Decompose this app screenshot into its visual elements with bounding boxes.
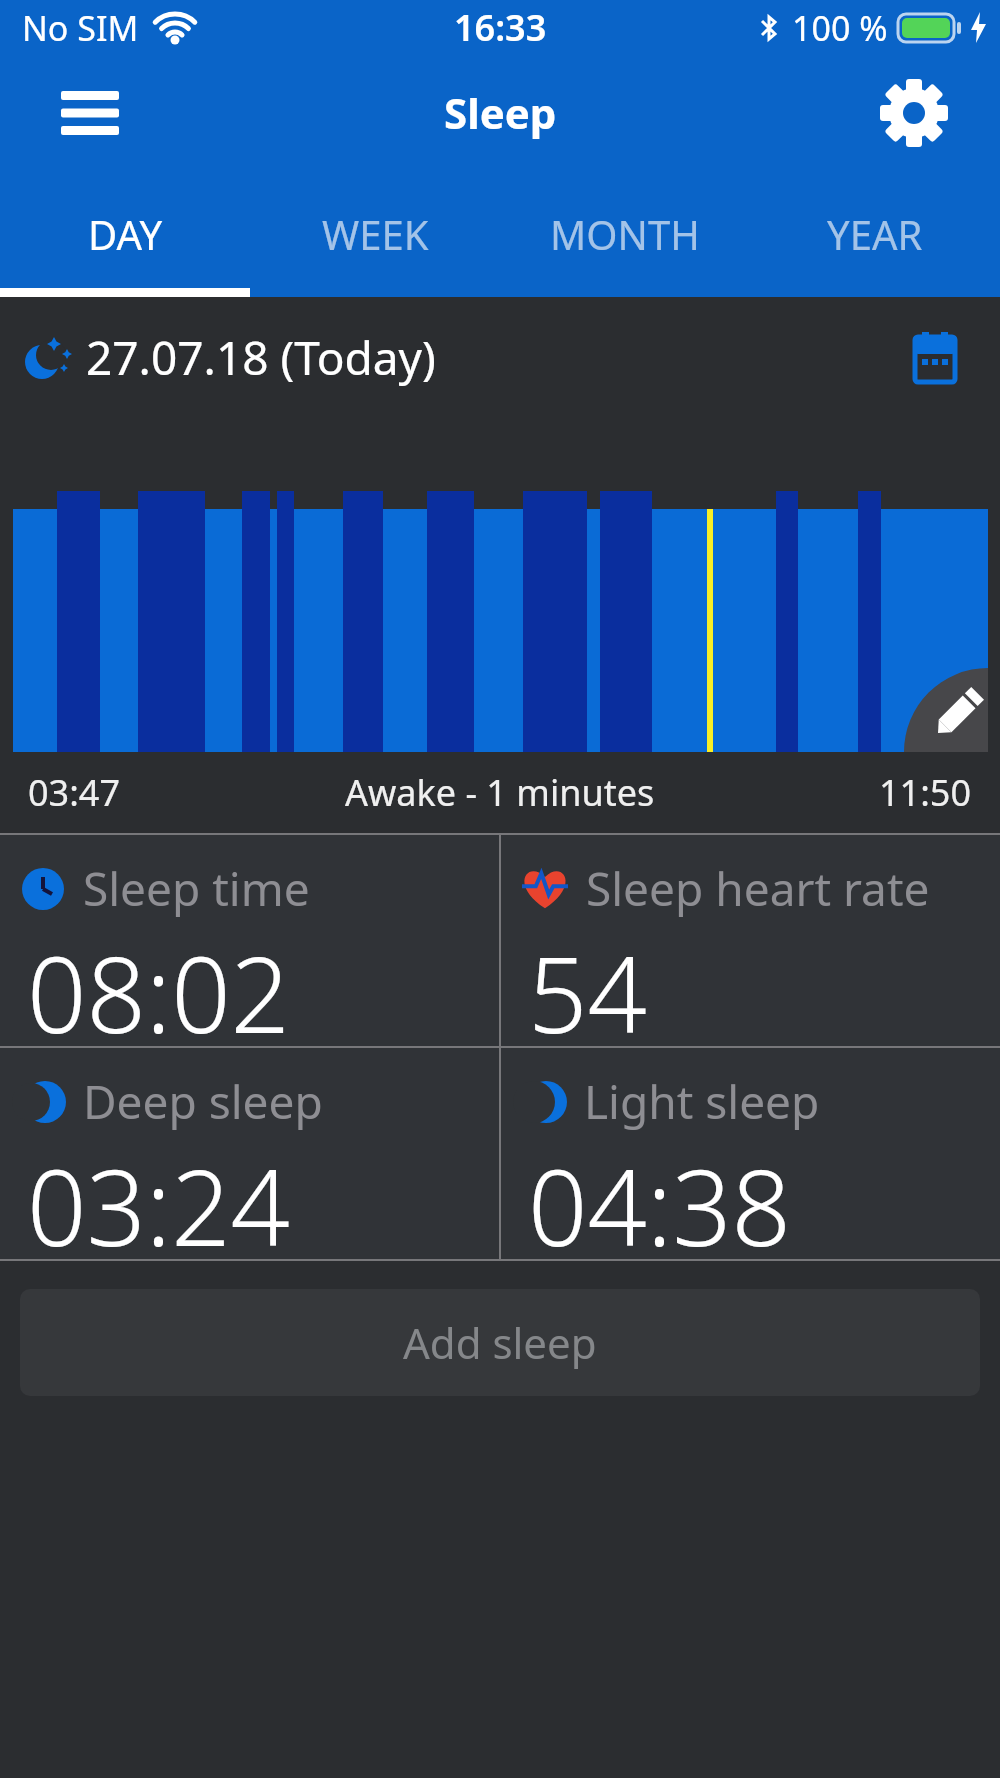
button[interactable]: DAY xyxy=(0,170,250,297)
button[interactable]: MONTH xyxy=(500,170,750,297)
button[interactable] xyxy=(900,322,970,392)
staticText: Sleep heart rate xyxy=(586,857,930,920)
staticText: Awake - 1 minutes xyxy=(345,768,655,817)
staticText: 100 % xyxy=(792,5,888,51)
staticText: 03:47 xyxy=(28,768,121,817)
staticText: 27.07.18 (Today) xyxy=(86,326,436,389)
staticText: WEEK xyxy=(322,207,429,261)
button[interactable]: Sleep time xyxy=(0,835,499,1046)
button[interactable]: WEEK xyxy=(250,170,500,297)
staticText: 04:38 xyxy=(528,1135,791,1259)
button[interactable] xyxy=(869,68,959,158)
button[interactable]: Light sleep xyxy=(501,1048,1000,1259)
staticText: Deep sleep xyxy=(83,1070,323,1133)
staticText: 03:24 xyxy=(27,1135,290,1259)
button[interactable]: Deep sleep xyxy=(0,1048,499,1259)
button[interactable] xyxy=(40,63,140,163)
button[interactable]: Sleep heart rate xyxy=(501,835,1000,1046)
button[interactable]: YEAR xyxy=(750,170,1000,297)
staticText: 08:02 xyxy=(27,922,290,1046)
staticText: Light sleep xyxy=(584,1070,820,1133)
button[interactable]: Add sleep xyxy=(20,1289,980,1396)
staticText: DAY xyxy=(88,207,163,261)
staticText: Sleep time xyxy=(83,857,310,920)
staticText: MONTH xyxy=(550,207,700,261)
staticText: No SIM xyxy=(22,5,139,51)
staticText: Sleep xyxy=(444,84,557,141)
staticText: Add sleep xyxy=(403,1314,597,1371)
staticText: 11:50 xyxy=(879,768,972,817)
staticText: 16:33 xyxy=(454,3,547,52)
button[interactable] xyxy=(13,491,988,752)
staticText: YEAR xyxy=(827,207,923,261)
staticText: 54 xyxy=(528,922,647,1046)
